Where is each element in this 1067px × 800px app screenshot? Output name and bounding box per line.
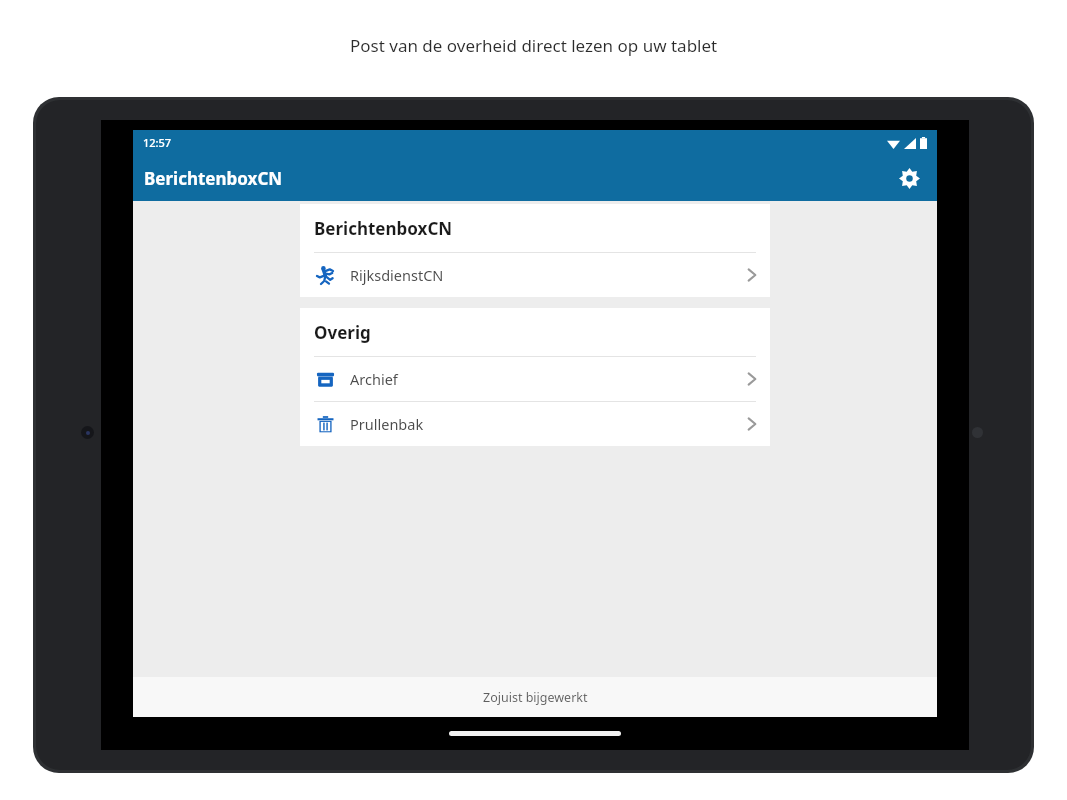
staticText: Prullenbak <box>350 414 748 434</box>
staticText: Zojuist bijgewerkt <box>483 689 588 706</box>
staticText: 12:57 <box>143 135 172 150</box>
staticText: Archief <box>350 369 748 389</box>
staticText: BerichtenboxCN <box>314 217 453 240</box>
staticText: Post van de overheid direct lezen op uw … <box>350 34 718 57</box>
button[interactable]: Instellingen <box>890 159 928 197</box>
staticText: BerichtenboxCN <box>144 167 283 190</box>
button[interactable]: Prullenbak <box>300 402 770 446</box>
staticText: RijksdienstCN <box>350 265 748 285</box>
staticText: Overig <box>314 321 371 344</box>
button[interactable]: Archief <box>300 357 770 401</box>
button[interactable]: RijksdienstCN <box>300 253 770 297</box>
